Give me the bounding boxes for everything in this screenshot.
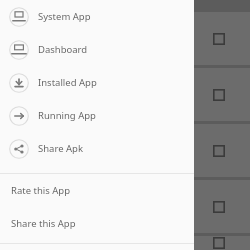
button[interactable]: Share this App: [0, 207, 194, 240]
staticText: Share Apk: [38, 142, 83, 155]
button[interactable]: System App: [0, 0, 194, 33]
button[interactable]: Rate this App: [0, 174, 194, 207]
button[interactable]: Running App: [0, 99, 194, 132]
button[interactable]: Select application: [0, 68, 250, 121]
button[interactable]: Select application: [0, 236, 250, 250]
button[interactable]: Select application: [0, 180, 250, 233]
button[interactable]: Select application: [0, 124, 250, 177]
button[interactable]: Share Apk: [0, 132, 194, 165]
staticText: Running App: [38, 109, 96, 122]
staticText: Share this App: [11, 217, 76, 230]
button[interactable]: Dashboard: [0, 33, 194, 66]
button[interactable]: Installed App: [0, 66, 194, 99]
staticText: System App: [38, 10, 91, 23]
button[interactable]: Select application: [213, 33, 225, 45]
button[interactable]: Select application: [213, 201, 225, 213]
button[interactable]: Select application: [0, 12, 250, 65]
staticText: Dashboard: [38, 43, 88, 56]
button[interactable]: Select application: [213, 145, 225, 157]
button[interactable]: Select application: [213, 237, 225, 249]
staticText: Installed App: [38, 76, 97, 89]
button[interactable]: Select application: [213, 89, 225, 101]
staticText: Rate this App: [11, 184, 71, 197]
